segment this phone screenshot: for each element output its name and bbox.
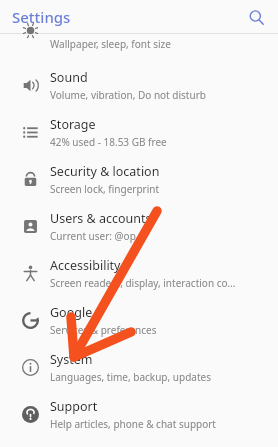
staticText: Storage	[50, 116, 96, 133]
staticText: Settings	[12, 7, 71, 27]
staticText: Support	[50, 398, 98, 415]
button[interactable]: Users & accounts	[0, 203, 278, 250]
staticText: Sound	[50, 69, 88, 86]
staticText: System	[50, 351, 93, 368]
button[interactable]: Storage	[0, 109, 278, 156]
staticText: Accessibility	[50, 257, 121, 274]
staticText: Languages, time, backup, updates	[50, 370, 211, 384]
button[interactable]: System	[0, 344, 278, 391]
staticText: Volume, vibration, Do not disturb	[50, 88, 206, 102]
staticText: Screen lock, fingerprint	[50, 182, 160, 196]
staticText: Help articles, phone & chat support	[50, 417, 216, 431]
staticText: Wallpaper, sleep, font size	[50, 37, 171, 51]
staticText: Services & preferences	[50, 323, 157, 337]
staticText: Current user: @op	[50, 229, 136, 243]
staticText: Security & location	[50, 163, 160, 180]
button[interactable]: Wallpaper, sleep, font size	[0, 34, 278, 62]
button[interactable]: Search settings	[242, 3, 270, 31]
button[interactable]: Accessibility	[0, 250, 278, 297]
staticText: Screen readers, display, interaction co…	[50, 276, 236, 290]
staticText: Users & accounts	[50, 210, 152, 227]
button[interactable]: Google	[0, 297, 278, 344]
button[interactable]: Sound	[0, 62, 278, 109]
button[interactable]: Support	[0, 391, 278, 438]
staticText: 42% used - 18.53 GB free	[50, 135, 167, 149]
button[interactable]: Security & location	[0, 156, 278, 203]
staticText: Google	[50, 304, 93, 321]
